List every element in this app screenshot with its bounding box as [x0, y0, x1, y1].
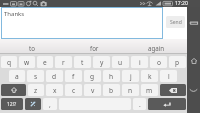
button[interactable]: l — [160, 70, 177, 82]
button[interactable]: to — [0, 39, 63, 54]
staticText: e — [43, 58, 47, 67]
button[interactable]: j — [122, 70, 139, 82]
staticText: v — [91, 86, 95, 95]
staticText: again — [148, 44, 165, 52]
staticText: a — [15, 72, 19, 81]
staticText: n — [128, 86, 133, 95]
staticText: i — [139, 58, 141, 67]
button[interactable]: f — [65, 70, 82, 82]
button[interactable]: z — [28, 84, 44, 96]
staticText: 12!? — [7, 101, 17, 108]
button[interactable]: w — [19, 56, 35, 68]
button[interactable] — [148, 98, 186, 110]
staticText: d — [52, 72, 57, 81]
staticText: for — [90, 44, 99, 52]
button[interactable]: o — [150, 56, 167, 68]
staticText: y — [100, 58, 104, 67]
button[interactable]: again — [125, 39, 187, 54]
button[interactable]: . — [133, 98, 146, 110]
button[interactable]: v — [84, 84, 101, 96]
staticText: z — [34, 86, 38, 95]
button[interactable]: i — [131, 56, 148, 68]
staticText: , — [49, 100, 51, 109]
staticText: 17:20 — [175, 0, 188, 7]
button[interactable]: u — [112, 56, 129, 68]
button[interactable]: y — [93, 56, 110, 68]
button[interactable]: m — [141, 84, 158, 96]
button[interactable] — [1, 84, 26, 96]
button[interactable]: a — [9, 70, 25, 82]
button[interactable]: q — [1, 56, 17, 68]
button[interactable]: r — [55, 56, 72, 68]
button[interactable]: Send — [166, 16, 185, 28]
button[interactable]: n — [122, 84, 139, 96]
staticText: s — [34, 72, 38, 81]
button[interactable]: c — [65, 84, 82, 96]
staticText: h — [109, 72, 114, 81]
staticText: l — [168, 72, 170, 81]
button[interactable]: , — [43, 98, 57, 110]
staticText: m — [146, 86, 153, 95]
staticText: Send — [170, 19, 182, 26]
button[interactable]: x — [46, 84, 63, 96]
button[interactable]: p — [169, 56, 186, 68]
button[interactable]: b — [103, 84, 120, 96]
staticText: b — [109, 86, 114, 95]
button[interactable]: for — [63, 39, 125, 54]
staticText: t — [81, 58, 84, 67]
staticText: f — [72, 72, 75, 81]
button[interactable]: Keyboard layout — [187, 7, 200, 39]
button[interactable]: Hide keyboard — [187, 83, 200, 98]
button[interactable]: d — [46, 70, 63, 82]
staticText: r — [62, 58, 65, 67]
staticText: x — [53, 86, 57, 95]
staticText: o — [157, 58, 161, 67]
button[interactable]: h — [103, 70, 120, 82]
staticText: q — [7, 58, 12, 67]
staticText: p — [175, 58, 180, 67]
button[interactable]: 12!? — [1, 98, 23, 110]
staticText: j — [130, 72, 132, 81]
staticText: k — [148, 72, 152, 81]
button[interactable]: s — [27, 70, 44, 82]
button[interactable]: e — [37, 56, 53, 68]
button[interactable]: g — [84, 70, 101, 82]
staticText: Thanks — [4, 10, 25, 18]
button[interactable]: k — [141, 70, 158, 82]
button[interactable]: Home — [187, 54, 200, 68]
button[interactable] — [160, 84, 186, 96]
staticText: g — [90, 72, 95, 81]
button[interactable] — [25, 98, 41, 110]
staticText: u — [118, 58, 123, 67]
button[interactable]: t — [74, 56, 91, 68]
staticText: . — [139, 100, 141, 109]
staticText: w — [24, 58, 30, 67]
staticText: to — [29, 44, 35, 52]
staticText: c — [72, 86, 76, 95]
